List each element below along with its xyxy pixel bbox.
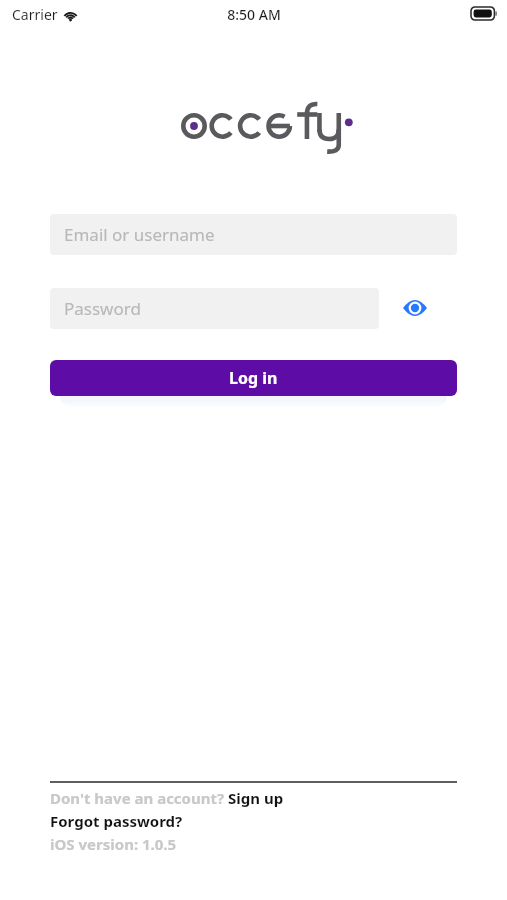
button[interactable]: Don't have an account? Sign up: [50, 788, 284, 808]
staticText: Log in: [229, 367, 278, 389]
staticText: Password: [64, 297, 141, 320]
staticText: Email or username: [64, 223, 215, 246]
button[interactable]: Forgot password?: [50, 811, 183, 831]
staticText: Forgot password?: [50, 811, 183, 831]
button[interactable]: Log in: [50, 360, 457, 396]
staticText: Don't have an account? Sign up: [50, 788, 284, 808]
button[interactable]: Show password: [396, 293, 434, 323]
staticText: 8:50 AM: [227, 5, 281, 24]
button[interactable]: Password: [50, 288, 379, 329]
button[interactable]: Email or username: [50, 214, 457, 255]
staticText: Carrier: [12, 5, 58, 24]
staticText: iOS version: 1.0.5: [50, 834, 177, 854]
